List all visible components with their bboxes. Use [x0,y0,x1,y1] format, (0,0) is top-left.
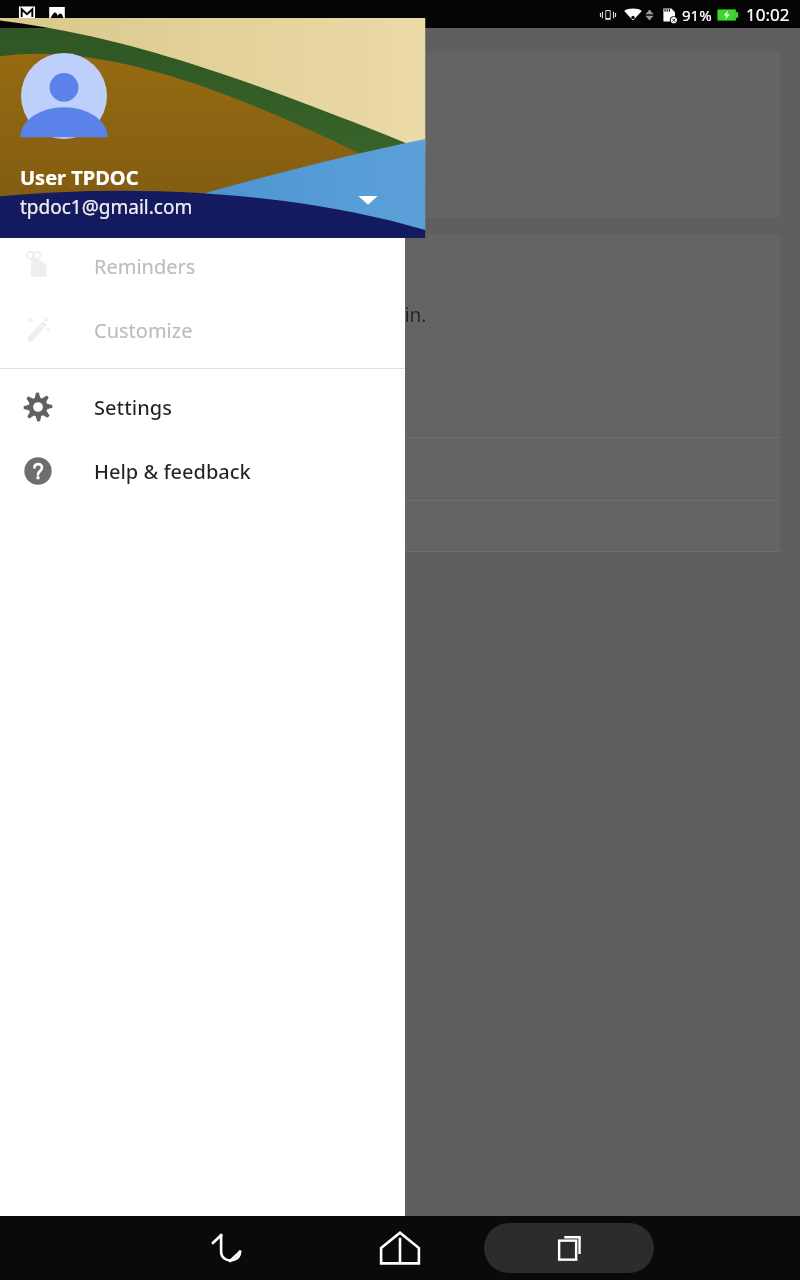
button[interactable]: Customize [0,298,405,362]
button[interactable]: Settings [0,375,405,439]
staticText: User TPDOC [20,164,139,191]
button[interactable]: Back [186,1216,276,1280]
button[interactable]: Reminders [0,234,405,298]
button[interactable]: User TPDOC [0,28,405,226]
button[interactable]: Switch account [348,180,388,220]
staticText: tpdoc1@gmail.com [20,194,193,220]
staticText: 10:02 [746,3,790,26]
staticText: 91% [682,5,712,25]
staticText: Reminders [94,253,196,280]
staticText: Help & feedback [94,458,251,485]
button[interactable]: Recent apps [484,1223,654,1273]
button[interactable]: Help & feedback [0,439,405,503]
staticText: Try speaking again. [254,302,427,328]
staticText: Settings [94,394,172,421]
button[interactable]: Home [355,1216,445,1280]
staticText: Customize [94,317,193,344]
